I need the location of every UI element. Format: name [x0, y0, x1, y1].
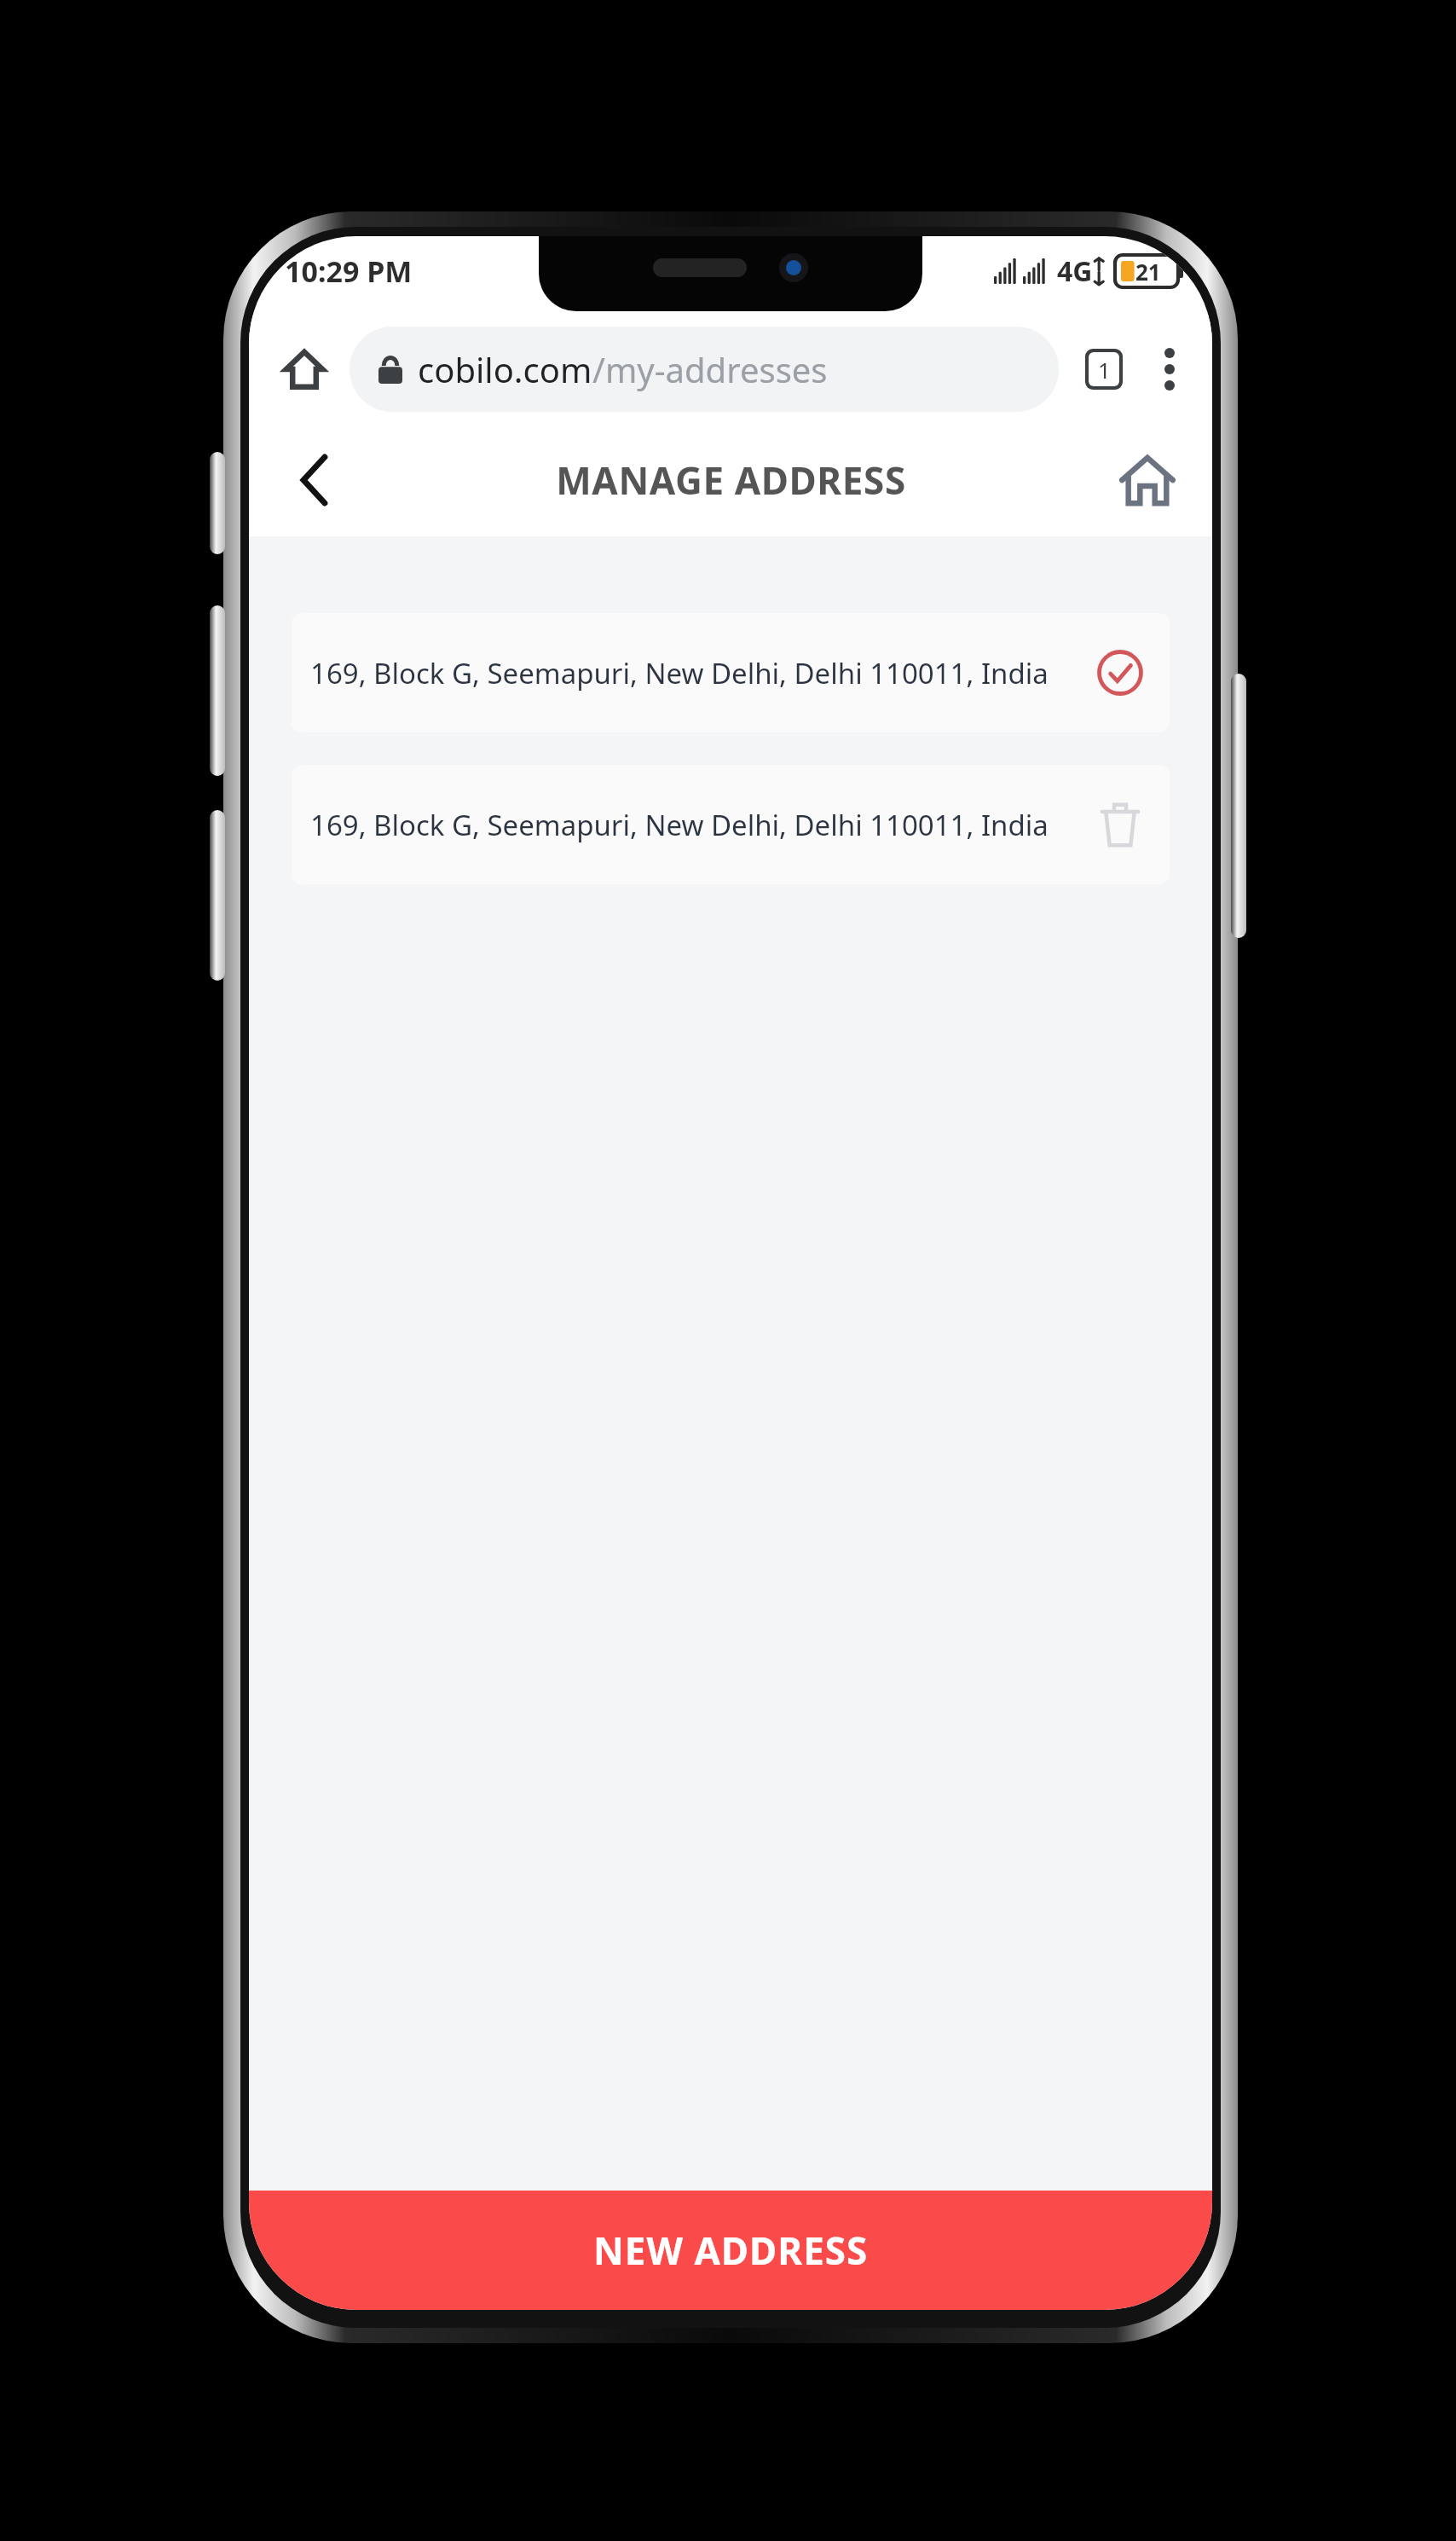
staticText: 169, Block G, Seemapuri, New Delhi, Delh… — [310, 806, 1081, 844]
staticText: /my-addresses — [592, 346, 828, 392]
staticText: 169, Block G, Seemapuri, New Delhi, Delh… — [310, 654, 1081, 692]
button[interactable]: Tabs — [1071, 336, 1137, 402]
staticText: NEW ADDRESS — [593, 2225, 869, 2276]
button[interactable]: NEW ADDRESS — [249, 2191, 1212, 2310]
staticText: 4G — [1057, 252, 1093, 290]
button[interactable]: 169, Block G, Seemapuri, New Delhi, Delh… — [292, 613, 1170, 732]
button[interactable]: Home — [1108, 441, 1187, 519]
button[interactable]: Back — [278, 443, 351, 517]
button[interactable]: cobilo.com — [350, 327, 1059, 412]
button[interactable]: Delete address — [1089, 794, 1151, 855]
button[interactable]: Home — [268, 333, 341, 406]
staticText: MANAGE ADDRESS — [556, 454, 906, 506]
button[interactable]: Selected address — [1089, 642, 1151, 703]
button[interactable]: 169, Block G, Seemapuri, New Delhi, Delh… — [292, 765, 1170, 884]
staticText: cobilo.com — [418, 346, 592, 392]
staticText: 21 — [1135, 257, 1161, 287]
button[interactable]: More options — [1137, 337, 1202, 402]
staticText: 10:29 PM — [285, 252, 413, 291]
staticText: 1 — [1098, 355, 1111, 385]
